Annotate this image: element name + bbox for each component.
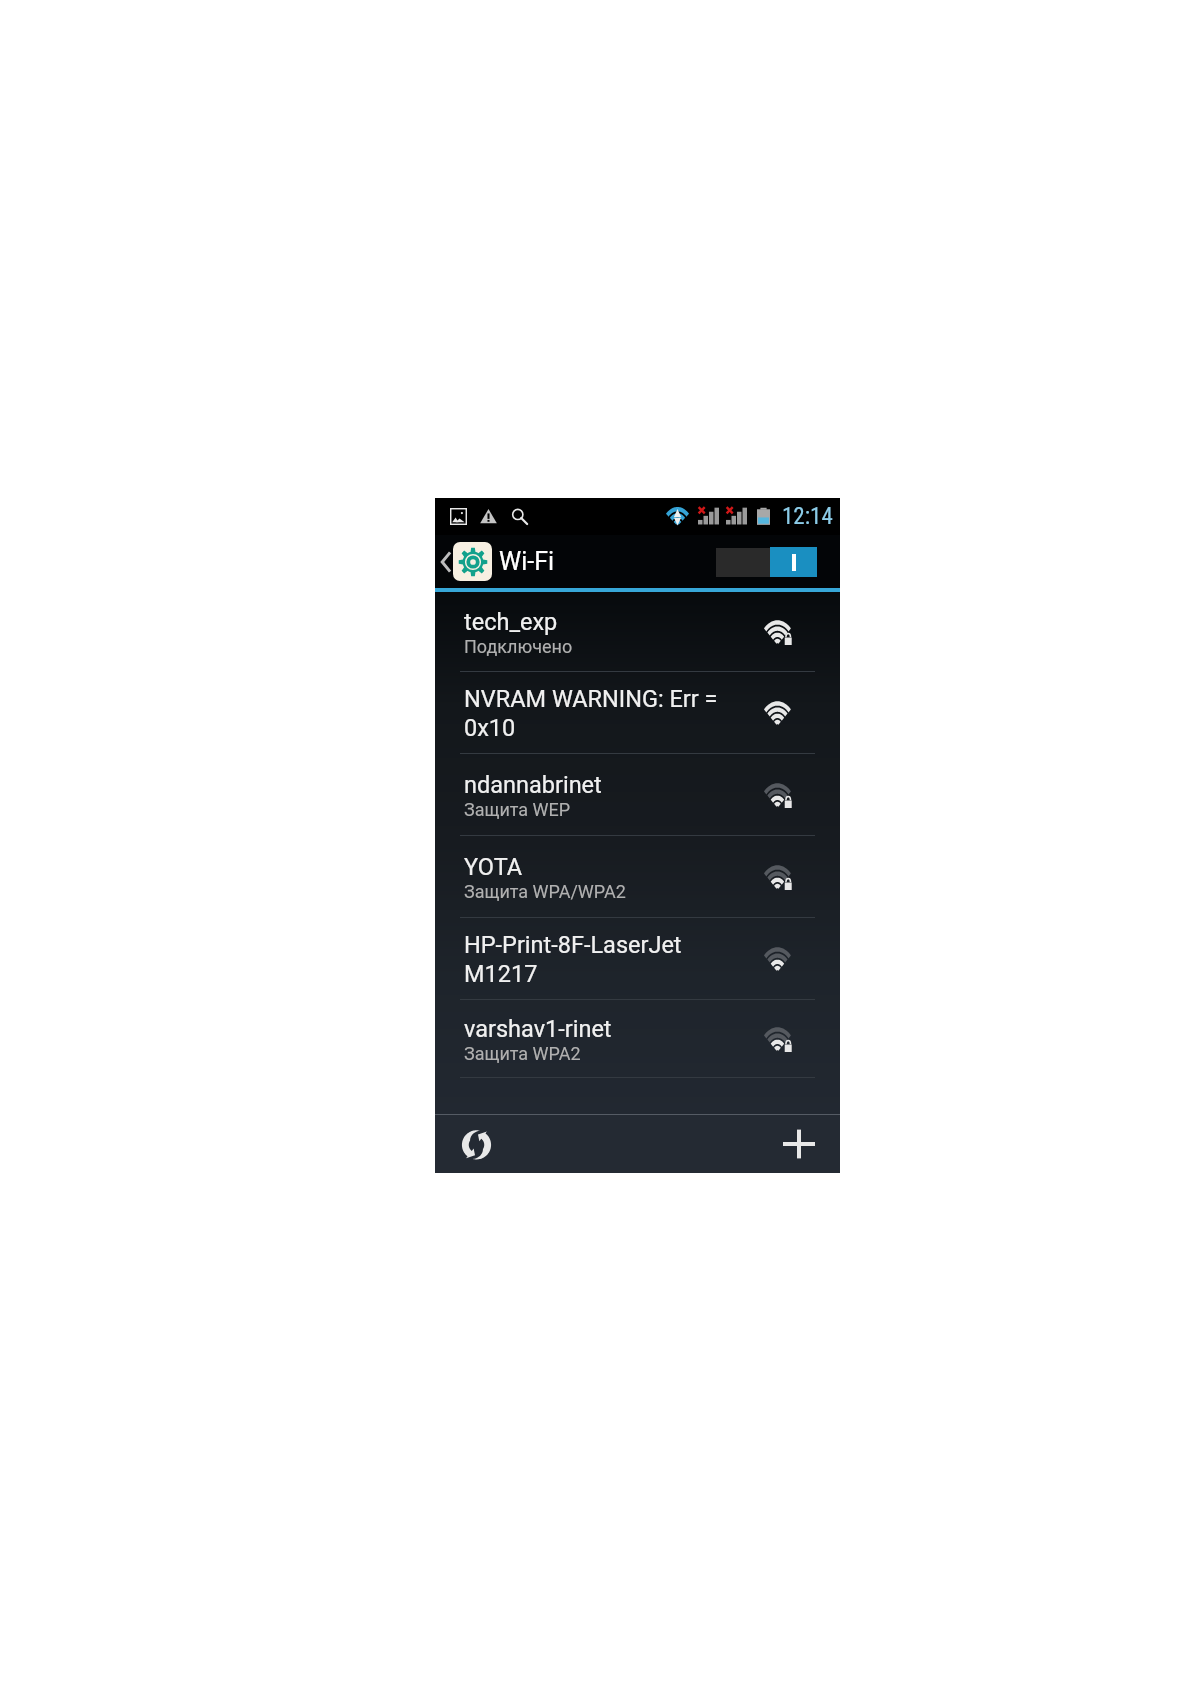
button[interactable]: ndannabrinet [435, 754, 840, 836]
button[interactable]: HP-Print-8F-LaserJet M1217 [435, 918, 840, 1000]
staticText: NVRAM WARNING: Err = 0x10 [464, 685, 718, 742]
button[interactable]: Scan [453, 1121, 499, 1167]
button[interactable]: tech_exp [435, 592, 840, 672]
staticText: Подключено [464, 636, 573, 657]
button[interactable]: NVRAM WARNING: Err = 0x10 [435, 672, 840, 754]
button[interactable]: Navigate up [435, 535, 567, 588]
button[interactable]: varshav1-rinet [435, 1000, 840, 1078]
staticText: ndannabrinet [464, 771, 602, 799]
staticText: Защита WEP [464, 799, 571, 820]
staticText: YOTA [464, 853, 523, 881]
staticText: Защита WPA2 [464, 1043, 581, 1064]
button[interactable]: Add network [776, 1121, 822, 1167]
staticText: varshav1-rinet [464, 1015, 612, 1043]
staticText: 12:14 [782, 503, 833, 530]
staticText: Защита WPA/WPA2 [464, 881, 626, 902]
staticText: tech_exp [464, 608, 558, 636]
button[interactable]: YOTA [435, 836, 840, 918]
staticText: Wi-Fi [499, 547, 555, 576]
button[interactable]: Wi-Fi on/off [716, 547, 817, 577]
staticText: HP-Print-8F-LaserJet M1217 [464, 931, 682, 988]
